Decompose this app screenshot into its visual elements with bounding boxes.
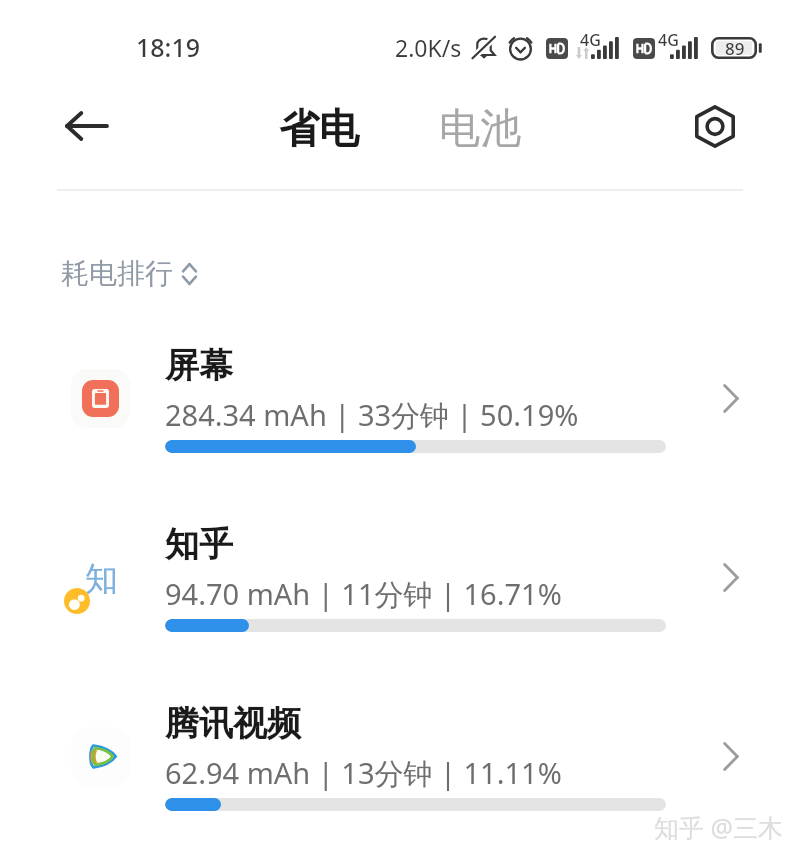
staticText: 284.34 mAh | 33分钟 | 50.19% <box>165 395 579 435</box>
staticText: 知乎 @三木 <box>654 810 783 844</box>
staticText: 屏幕 <box>165 344 233 387</box>
staticText: 2.0K/s <box>395 32 462 63</box>
button[interactable]: 腾讯视频 <box>0 632 800 811</box>
button[interactable]: 屏幕 <box>0 274 800 453</box>
staticText: 4G <box>580 29 601 51</box>
button[interactable]: 耗电排行 <box>61 256 198 291</box>
staticText: 电池 <box>439 103 521 155</box>
staticText: 4G <box>658 29 679 51</box>
button[interactable]: Back <box>50 90 122 162</box>
staticText: 腾讯视频 <box>165 702 301 745</box>
button[interactable]: 省电 <box>259 93 379 163</box>
staticText: 省电 <box>279 103 359 153</box>
staticText: 18:19 <box>136 30 201 64</box>
staticText: 62.94 mAh | 13分钟 | 11.11% <box>165 753 562 793</box>
staticText: 知 <box>85 558 118 600</box>
staticText: 89 <box>725 37 745 59</box>
staticText: 94.70 mAh | 11分钟 | 16.71% <box>165 574 562 614</box>
button[interactable]: Settings <box>681 92 749 160</box>
button[interactable]: 知 <box>0 453 800 632</box>
staticText: 知乎 <box>165 523 233 566</box>
staticText: 耗电排行 <box>61 256 173 291</box>
button[interactable]: 电池 <box>420 94 540 164</box>
